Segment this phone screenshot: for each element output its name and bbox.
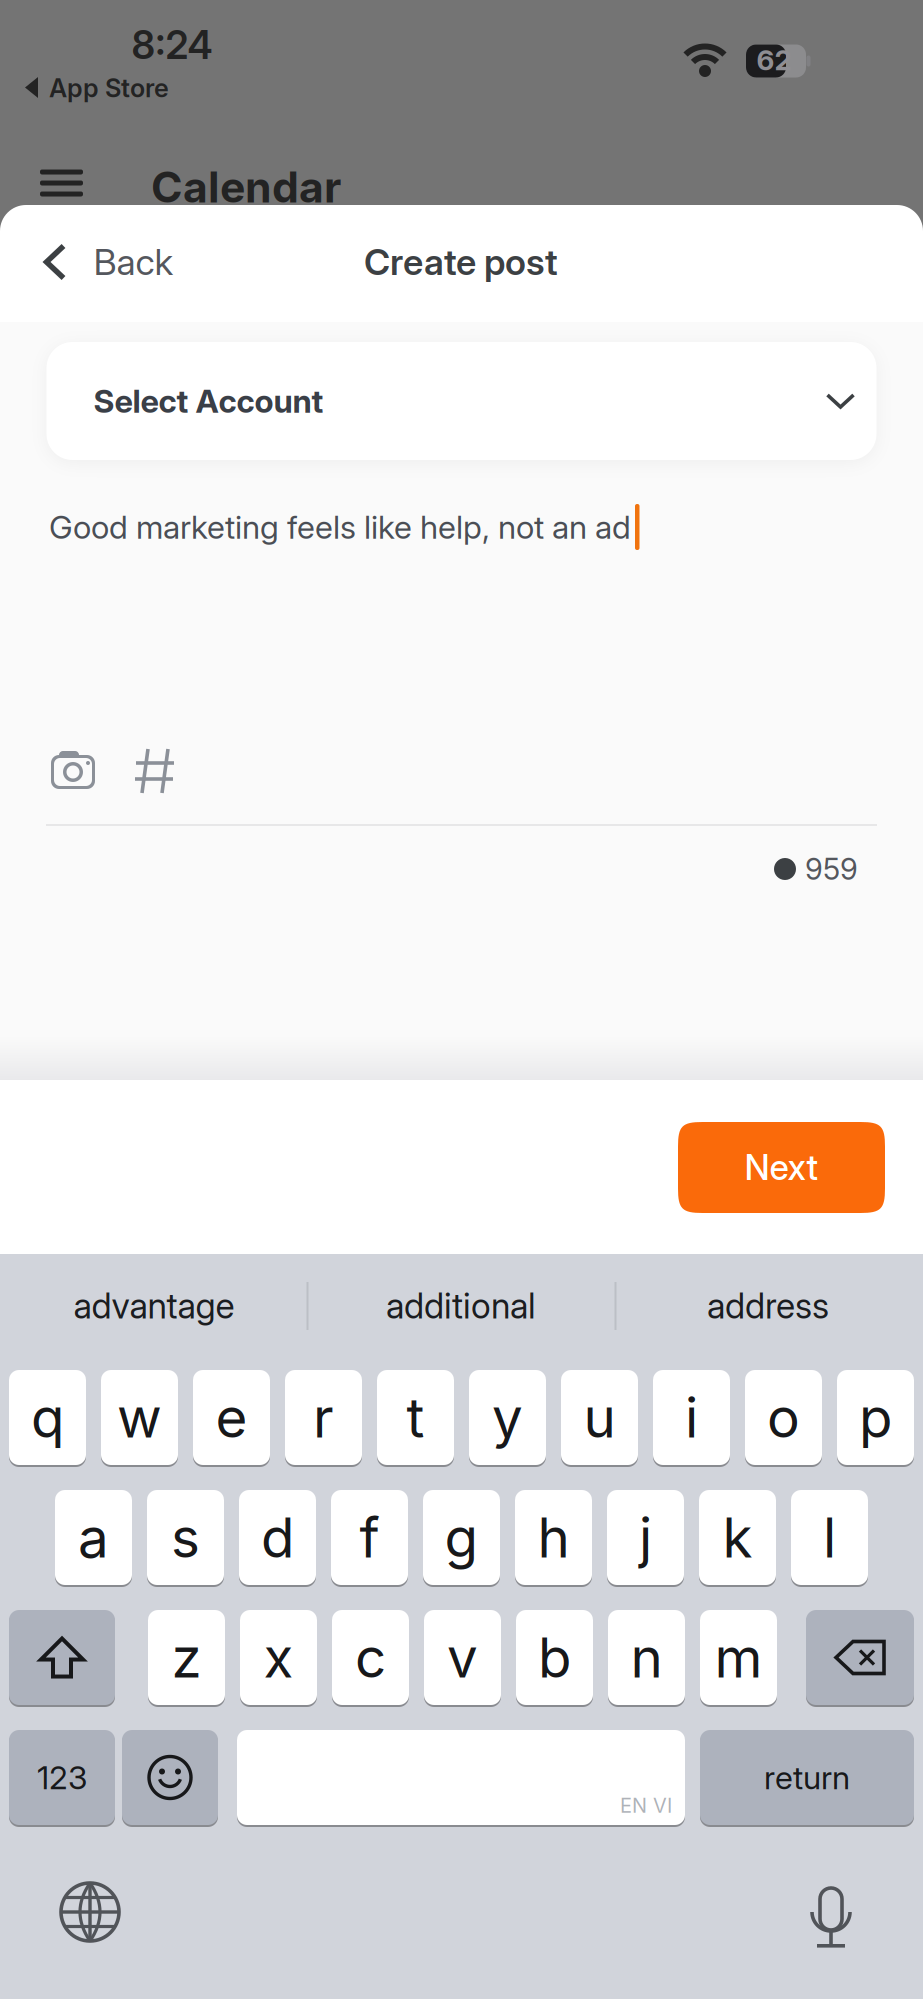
- staticText: return: [764, 1759, 850, 1796]
- button[interactable]: p: [837, 1370, 914, 1465]
- staticText: i: [685, 1385, 698, 1450]
- button[interactable]: t: [377, 1370, 454, 1465]
- staticText: q: [31, 1385, 64, 1450]
- staticText: u: [583, 1385, 615, 1450]
- staticText: Good marketing feels like help, not an a…: [49, 508, 631, 546]
- button[interactable]: s: [147, 1490, 224, 1585]
- button[interactable]: o: [745, 1370, 822, 1465]
- button[interactable]: address: [707, 1286, 829, 1326]
- button[interactable]: 123: [9, 1730, 115, 1825]
- staticText: v: [447, 1625, 478, 1690]
- staticText: d: [261, 1505, 294, 1570]
- staticText: w: [117, 1385, 162, 1450]
- button[interactable]: g: [423, 1490, 500, 1585]
- staticText: EN VI: [620, 1794, 672, 1817]
- button[interactable]: c: [332, 1610, 409, 1705]
- staticText: Calendar: [151, 162, 341, 212]
- button[interactable]: v: [424, 1610, 501, 1705]
- staticText: l: [823, 1505, 836, 1570]
- staticText: Next: [744, 1147, 818, 1188]
- button[interactable]: h: [515, 1490, 592, 1585]
- button[interactable]: e: [193, 1370, 270, 1465]
- staticText: t: [406, 1385, 424, 1450]
- staticText: r: [313, 1385, 334, 1450]
- staticText: z: [171, 1625, 201, 1690]
- staticText: g: [444, 1505, 478, 1570]
- button[interactable]: [60, 1882, 120, 1942]
- staticText: Back: [93, 241, 173, 283]
- staticText: 123: [37, 1759, 87, 1796]
- staticText: c: [355, 1625, 386, 1690]
- button[interactable]: [810, 1881, 852, 1941]
- button[interactable]: App Store: [23, 73, 169, 103]
- button[interactable]: Select Account: [46, 342, 876, 460]
- staticText: j: [639, 1505, 652, 1570]
- button[interactable]: f: [331, 1490, 408, 1585]
- staticText: p: [859, 1385, 892, 1450]
- button[interactable]: Next: [678, 1122, 885, 1213]
- button[interactable]: [40, 169, 83, 196]
- button[interactable]: y: [469, 1370, 546, 1465]
- staticText: m: [714, 1625, 762, 1690]
- button[interactable]: EN VI: [237, 1730, 685, 1825]
- staticText: App Store: [49, 73, 169, 103]
- button[interactable]: q: [9, 1370, 86, 1465]
- staticText: k: [722, 1505, 752, 1570]
- button[interactable]: additional: [386, 1286, 536, 1326]
- button[interactable]: d: [239, 1490, 316, 1585]
- staticText: h: [537, 1505, 569, 1570]
- button[interactable]: i: [653, 1370, 730, 1465]
- button[interactable]: [9, 1610, 115, 1705]
- button[interactable]: [50, 750, 96, 790]
- button[interactable]: k: [699, 1490, 776, 1585]
- staticText: 62: [756, 43, 791, 76]
- button[interactable]: z: [148, 1610, 225, 1705]
- button[interactable]: x: [240, 1610, 317, 1705]
- staticText: advantage: [73, 1286, 234, 1326]
- staticText: o: [767, 1385, 800, 1450]
- staticText: f: [359, 1505, 379, 1570]
- button[interactable]: a: [55, 1490, 132, 1585]
- button[interactable]: advantage: [73, 1286, 234, 1326]
- button[interactable]: r: [285, 1370, 362, 1465]
- staticText: x: [263, 1625, 293, 1690]
- staticText: e: [215, 1385, 247, 1450]
- button[interactable]: [122, 1730, 218, 1825]
- button[interactable]: return: [700, 1730, 914, 1825]
- staticText: Select Account: [93, 382, 323, 420]
- button[interactable]: b: [516, 1610, 593, 1705]
- staticText: additional: [386, 1286, 536, 1326]
- button[interactable]: u: [561, 1370, 638, 1465]
- button[interactable]: j: [607, 1490, 684, 1585]
- staticText: 959: [805, 852, 858, 886]
- staticText: s: [171, 1505, 200, 1570]
- staticText: 8:24: [131, 22, 212, 68]
- button[interactable]: w: [101, 1370, 178, 1465]
- button[interactable]: l: [791, 1490, 868, 1585]
- staticText: n: [630, 1625, 662, 1690]
- staticText: b: [538, 1625, 571, 1690]
- staticText: Create post: [364, 241, 558, 283]
- staticText: address: [707, 1286, 829, 1326]
- button[interactable]: [806, 1610, 914, 1705]
- button[interactable]: n: [608, 1610, 685, 1705]
- staticText: a: [78, 1505, 109, 1570]
- button[interactable]: Back: [42, 241, 173, 283]
- staticText: y: [492, 1385, 523, 1450]
- button[interactable]: [135, 748, 175, 794]
- button[interactable]: m: [700, 1610, 777, 1705]
